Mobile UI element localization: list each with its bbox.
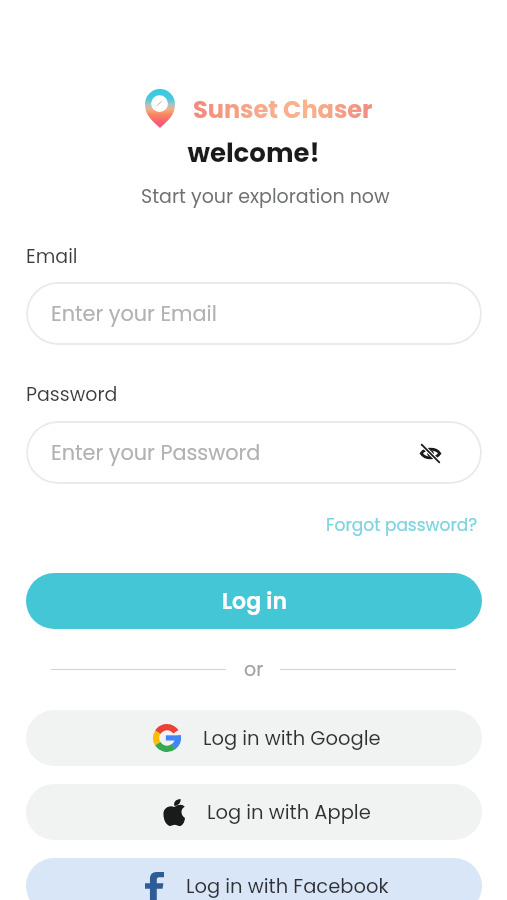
staticText: Start your exploration now	[141, 183, 390, 210]
staticText: Forgot password?	[326, 513, 478, 537]
staticText: Log in	[222, 586, 287, 617]
button[interactable]: Log in with Google	[26, 710, 482, 766]
staticText: Email	[26, 243, 78, 270]
button[interactable]: Log in with Facebook	[26, 858, 482, 900]
staticText: Enter your Password	[51, 438, 261, 467]
staticText: Log in with Google	[203, 725, 381, 752]
button[interactable]: Enter your Email	[26, 282, 482, 345]
button[interactable]: Show password	[416, 439, 444, 467]
staticText: Log in with Facebook	[186, 873, 389, 900]
button[interactable]: Log in with Apple	[26, 784, 482, 840]
button[interactable]: Log in	[26, 573, 482, 629]
staticText: welcome!	[0, 135, 507, 171]
staticText: Enter your Email	[51, 299, 217, 328]
staticText: Log in with Apple	[207, 799, 371, 826]
staticText: Password	[26, 381, 118, 408]
staticText: or	[244, 656, 264, 678]
staticText: Sunset Chaser	[193, 93, 373, 127]
button[interactable]: Forgot password?	[326, 513, 478, 537]
button[interactable]: Enter your Password	[26, 421, 482, 484]
